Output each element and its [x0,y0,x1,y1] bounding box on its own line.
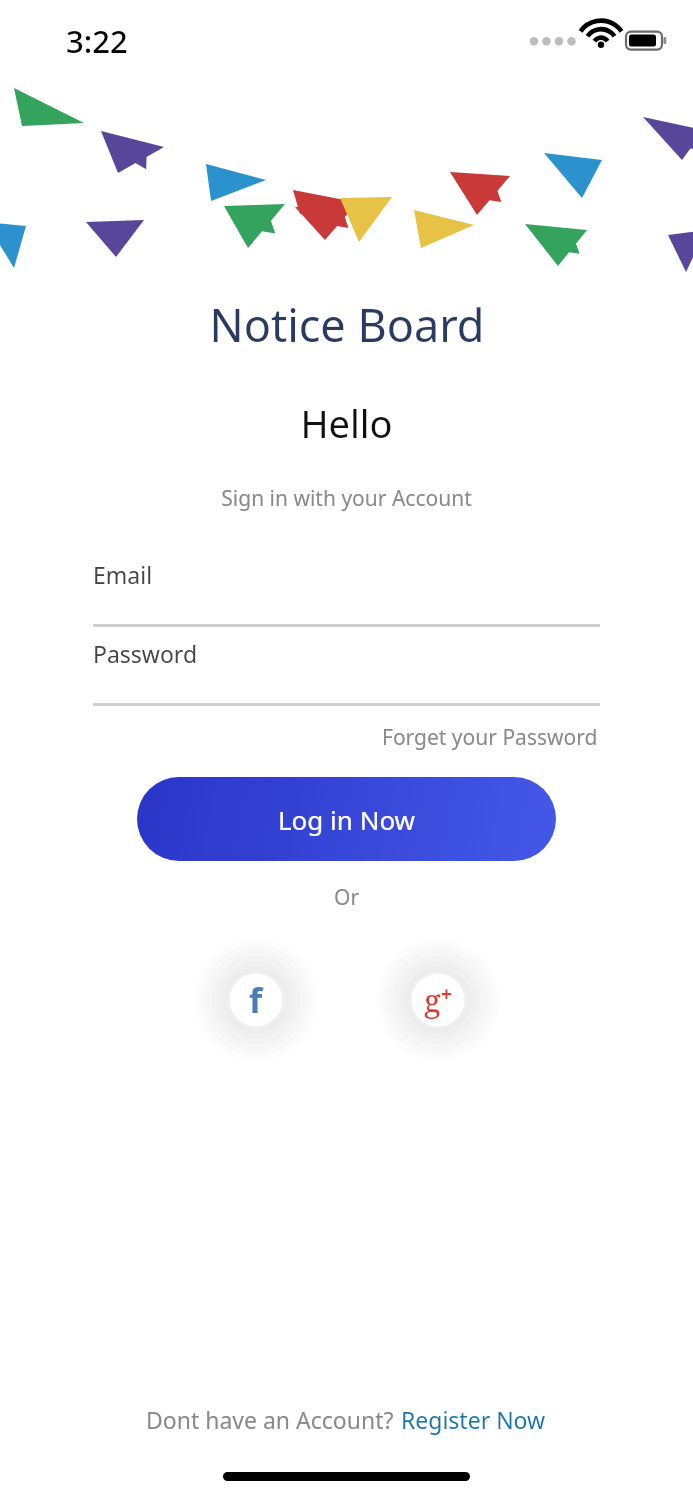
staticText: Email [93,559,153,590]
staticText: Or [334,883,360,912]
staticText: Hello [300,397,393,449]
staticText: Notice Board [209,294,485,355]
staticText: Register Now [401,1404,546,1435]
button[interactable]: Sign in with Google Plus [394,956,482,1044]
button[interactable]: Register Now [400,1401,547,1438]
button[interactable]: Log in Now [137,777,556,861]
staticText: Password [93,638,198,669]
button[interactable]: Forget your Password [380,720,600,755]
staticText: 3:22 [66,20,128,62]
staticText: Forget your Password [382,723,598,752]
staticText: + [441,981,452,1007]
staticText: Dont have an Account? [146,1404,400,1435]
staticText: f [249,977,263,1023]
button[interactable]: Sign in with Facebook [212,956,300,1044]
button[interactable]: Email [93,559,600,627]
staticText: Log in Now [278,802,416,837]
staticText: g [424,979,441,1021]
button[interactable]: Password [93,638,600,706]
staticText: Sign in with your Account [221,484,472,513]
